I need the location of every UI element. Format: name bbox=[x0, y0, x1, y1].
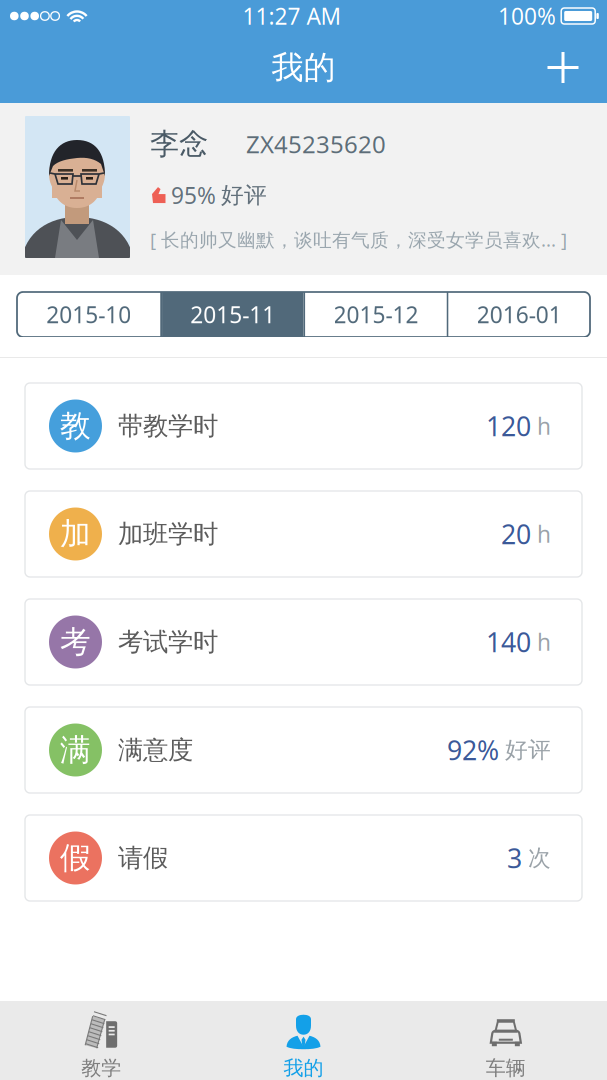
staticText: 100% bbox=[498, 1, 556, 31]
button[interactable]: 满 bbox=[25, 707, 582, 793]
staticText: [ 长的帅又幽默，谈吐有气质，深受女学员喜欢... ] bbox=[150, 227, 567, 252]
button[interactable]: 2015-12 bbox=[305, 292, 447, 337]
staticText: 2016-01 bbox=[477, 299, 562, 329]
staticText: 120 bbox=[486, 408, 531, 444]
button[interactable]: 我的 bbox=[202, 1001, 405, 1080]
button[interactable]: 车辆 bbox=[405, 1001, 607, 1080]
staticText: h bbox=[537, 411, 551, 441]
staticText: 带教学时 bbox=[118, 410, 218, 441]
staticText: 2015-12 bbox=[333, 299, 418, 329]
staticText: 2015-11 bbox=[190, 299, 275, 329]
staticText: 2015-10 bbox=[46, 299, 131, 329]
staticText: 考试学时 bbox=[118, 626, 218, 657]
staticText: 教 bbox=[60, 407, 91, 445]
button[interactable]: 假 bbox=[25, 815, 582, 901]
staticText: 我的 bbox=[283, 1056, 323, 1080]
button[interactable]: 考 bbox=[25, 599, 582, 685]
staticText: 好评 bbox=[221, 181, 267, 209]
staticText: 请假 bbox=[118, 842, 168, 873]
staticText: h bbox=[537, 627, 551, 657]
staticText: 加 bbox=[60, 515, 91, 553]
staticText: 我的 bbox=[271, 48, 335, 87]
staticText: 95% bbox=[171, 180, 216, 210]
staticText: 满 bbox=[60, 731, 91, 769]
staticText: 李念 bbox=[150, 126, 208, 162]
staticText: h bbox=[537, 519, 551, 549]
staticText: 92% bbox=[447, 732, 499, 768]
staticText: ZX45235620 bbox=[246, 128, 386, 160]
staticText: 好评 bbox=[505, 736, 551, 764]
staticText: 3 bbox=[507, 840, 522, 876]
staticText: 20 bbox=[501, 516, 531, 552]
staticText: 假 bbox=[60, 839, 91, 877]
staticText: 11:27 AM bbox=[242, 1, 341, 31]
button[interactable]: 2015-11 bbox=[162, 292, 303, 337]
button[interactable]: 2016-01 bbox=[449, 292, 590, 337]
staticText: 140 bbox=[486, 624, 531, 660]
staticText: 次 bbox=[528, 844, 551, 872]
staticText: 加班学时 bbox=[118, 518, 218, 549]
button[interactable]: 教学 bbox=[0, 1001, 202, 1080]
staticText: 车辆 bbox=[486, 1056, 526, 1080]
staticText: 满意度 bbox=[118, 734, 193, 765]
button[interactable]: 加 bbox=[25, 491, 582, 577]
button[interactable]: 教 bbox=[25, 383, 582, 469]
staticText: 考 bbox=[60, 623, 91, 661]
button[interactable]: Add bbox=[537, 41, 589, 93]
staticText: 教学 bbox=[81, 1056, 121, 1080]
button[interactable]: 2015-10 bbox=[17, 292, 160, 337]
